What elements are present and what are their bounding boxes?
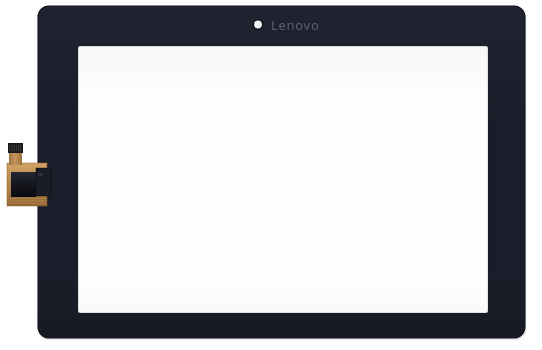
button[interactable]: Lenovo tablet touch digitizer panel: [0, 0, 542, 350]
